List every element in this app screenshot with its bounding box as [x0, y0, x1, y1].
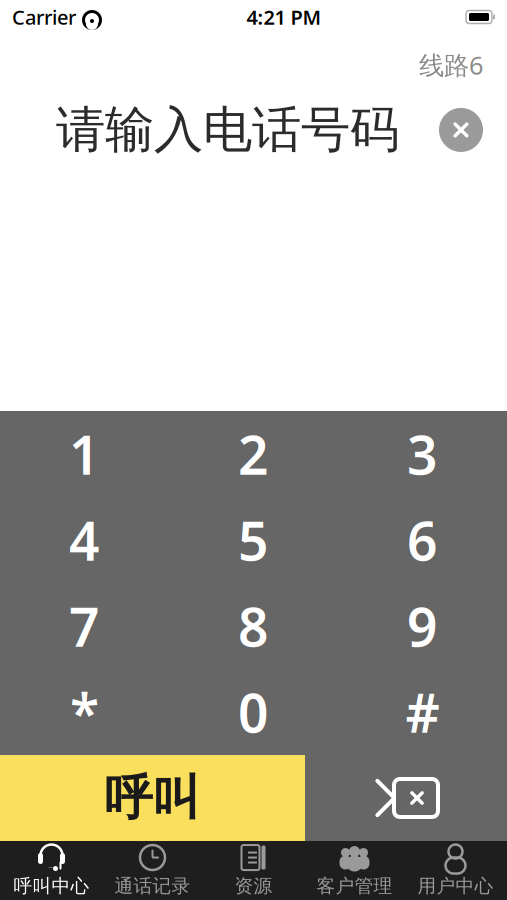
button[interactable]: *	[0, 669, 169, 755]
button[interactable]: Delete	[305, 755, 507, 841]
button[interactable]: 1	[0, 411, 169, 497]
button[interactable]: 7	[0, 583, 169, 669]
button[interactable]: 5	[169, 497, 338, 583]
staticText: 3	[407, 419, 438, 489]
button[interactable]: 用户中心	[405, 841, 506, 900]
staticText: 6	[407, 505, 438, 575]
staticText: 7	[69, 591, 100, 661]
button[interactable]: 呼叫	[0, 755, 305, 841]
button[interactable]: 6	[338, 497, 507, 583]
staticText: Carrier	[12, 4, 76, 30]
staticText: 通话记录	[114, 874, 190, 897]
staticText: 客户管理	[316, 874, 392, 897]
staticText: 呼叫中心	[13, 874, 89, 897]
button[interactable]: 9	[338, 583, 507, 669]
staticText: 8	[238, 591, 269, 661]
staticText: 请输入电话号码	[56, 100, 399, 160]
staticText: 9	[407, 591, 438, 661]
staticText: *	[70, 677, 99, 747]
staticText: 5	[238, 505, 269, 575]
staticText: 线路6	[419, 48, 483, 82]
button[interactable]: #	[338, 669, 507, 755]
button[interactable]: 3	[338, 411, 507, 497]
staticText: 呼叫	[104, 768, 200, 827]
staticText: 4:21 PM	[246, 4, 321, 30]
button[interactable]: 4	[0, 497, 169, 583]
staticText: 2	[238, 419, 269, 489]
staticText: 资源	[234, 874, 272, 897]
button[interactable]: 呼叫中心	[1, 841, 102, 900]
staticText: #	[405, 677, 439, 747]
button[interactable]: 8	[169, 583, 338, 669]
button[interactable]: 通话记录	[102, 841, 203, 900]
staticText: 0	[238, 677, 269, 747]
staticText: 4	[69, 505, 100, 575]
button[interactable]: 0	[169, 669, 338, 755]
button[interactable]: 2	[169, 411, 338, 497]
button[interactable]: 客户管理	[304, 841, 405, 900]
staticText: 用户中心	[417, 874, 493, 897]
staticText: 1	[69, 419, 100, 489]
button[interactable]: 资源	[203, 841, 304, 900]
button[interactable]: Clear	[433, 102, 489, 158]
